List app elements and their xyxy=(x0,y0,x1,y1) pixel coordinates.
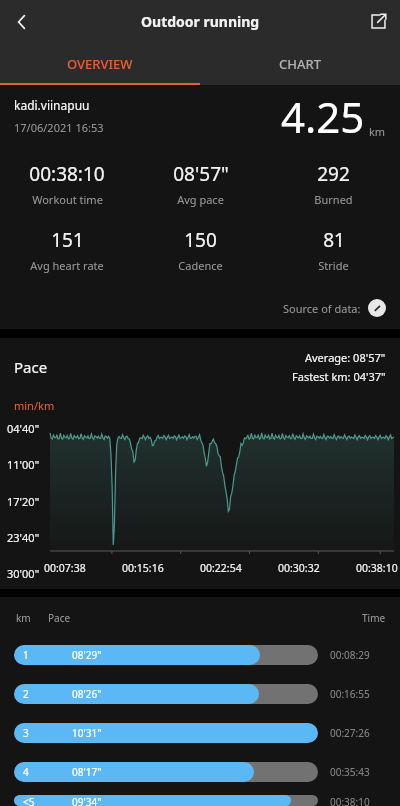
staticText: 30'00" xyxy=(7,566,40,581)
staticText: Source of data: xyxy=(283,301,361,316)
staticText: 08'17" xyxy=(72,765,102,779)
staticText: Pace xyxy=(14,357,48,377)
staticText: Avg heart rate xyxy=(30,258,104,273)
staticText: 00:22:54 xyxy=(200,561,242,575)
staticText: 17'20" xyxy=(7,494,40,509)
staticText: Time xyxy=(362,611,386,625)
staticText: Average: 08'57" xyxy=(305,350,386,365)
staticText: Workout time xyxy=(32,192,103,207)
staticText: 1 xyxy=(23,648,29,662)
staticText: 04'40" xyxy=(7,421,40,436)
staticText: 00:16:55 xyxy=(330,687,392,701)
staticText: 10'31" xyxy=(72,726,102,740)
staticText: Fastest km: 04'37" xyxy=(292,369,386,384)
staticText: 00:38:10 xyxy=(330,795,392,806)
staticText: Cadence xyxy=(178,258,223,273)
staticText: 292 xyxy=(317,161,350,187)
button[interactable]: <5 xyxy=(0,795,400,806)
staticText: Avg pace xyxy=(177,192,224,207)
staticText: 00:15:16 xyxy=(122,561,164,575)
button[interactable]: Source of data: xyxy=(0,299,386,317)
staticText: 08'26" xyxy=(72,687,102,701)
button[interactable]: OVERVIEW xyxy=(0,43,200,85)
staticText: <5 xyxy=(23,795,35,806)
staticText: 23'40" xyxy=(7,530,40,545)
staticText: 00:08:29 xyxy=(330,648,392,662)
staticText: 150 xyxy=(184,227,217,253)
staticText: 151 xyxy=(51,227,84,253)
staticText: 3 xyxy=(23,726,29,740)
staticText: 00:38:10 xyxy=(356,561,398,575)
staticText: 00:27:26 xyxy=(330,726,392,740)
staticText: 11'00" xyxy=(7,457,40,472)
staticText: km xyxy=(16,611,31,625)
staticText: 00:35:43 xyxy=(330,765,392,779)
staticText: Stride xyxy=(318,258,349,273)
button[interactable]: 3 xyxy=(0,717,400,748)
staticText: Outdoor running xyxy=(141,12,260,31)
staticText: 4.25 xyxy=(281,88,365,145)
staticText: km xyxy=(369,124,386,139)
staticText: 00:07:38 xyxy=(44,561,86,575)
staticText: Burned xyxy=(314,192,353,207)
staticText: 00:38:10 xyxy=(29,161,105,187)
staticText: 08'57" xyxy=(173,161,229,187)
button[interactable]: Back xyxy=(0,0,44,43)
staticText: 81 xyxy=(323,227,345,253)
staticText: 4 xyxy=(23,765,29,779)
staticText: 17/06/2021 16:53 xyxy=(14,120,104,135)
staticText: min/km xyxy=(14,398,55,413)
staticText: 00:30:32 xyxy=(278,561,320,575)
button[interactable]: CHART xyxy=(200,43,400,85)
staticText: CHART xyxy=(279,55,322,73)
staticText: kadi.viinapuu xyxy=(14,97,90,113)
button[interactable]: 2 xyxy=(0,678,400,709)
staticText: 08'29" xyxy=(72,648,102,662)
button[interactable]: 1 xyxy=(0,639,400,670)
staticText: OVERVIEW xyxy=(67,55,133,73)
staticText: 09'34" xyxy=(72,795,102,806)
staticText: Pace xyxy=(48,611,71,625)
staticText: 2 xyxy=(23,687,29,701)
button[interactable]: Share xyxy=(356,0,400,43)
button[interactable]: 4 xyxy=(0,756,400,787)
